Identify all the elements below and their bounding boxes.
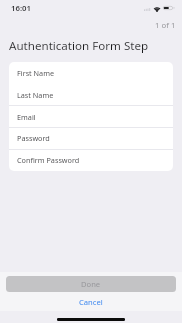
- button[interactable]: Cancel: [0, 292, 182, 311]
- staticText: 1 of 1: [155, 20, 176, 31]
- button[interactable]: Last Name: [9, 84, 173, 106]
- staticText: Last Name: [17, 90, 54, 100]
- staticText: Password: [17, 133, 50, 143]
- staticText: Authentication Form Step: [9, 38, 149, 54]
- button[interactable]: Password: [9, 127, 173, 149]
- staticText: Cancel: [79, 297, 103, 307]
- staticText: Confirm Password: [17, 155, 80, 165]
- button[interactable]: First Name: [9, 62, 173, 84]
- staticText: Done: [81, 279, 101, 289]
- button[interactable]: Confirm Password: [9, 149, 173, 171]
- staticText: Email: [17, 112, 36, 122]
- staticText: 16:01: [11, 3, 31, 14]
- button[interactable]: Done: [6, 276, 176, 292]
- staticText: First Name: [17, 68, 55, 78]
- button[interactable]: Email: [9, 106, 173, 128]
